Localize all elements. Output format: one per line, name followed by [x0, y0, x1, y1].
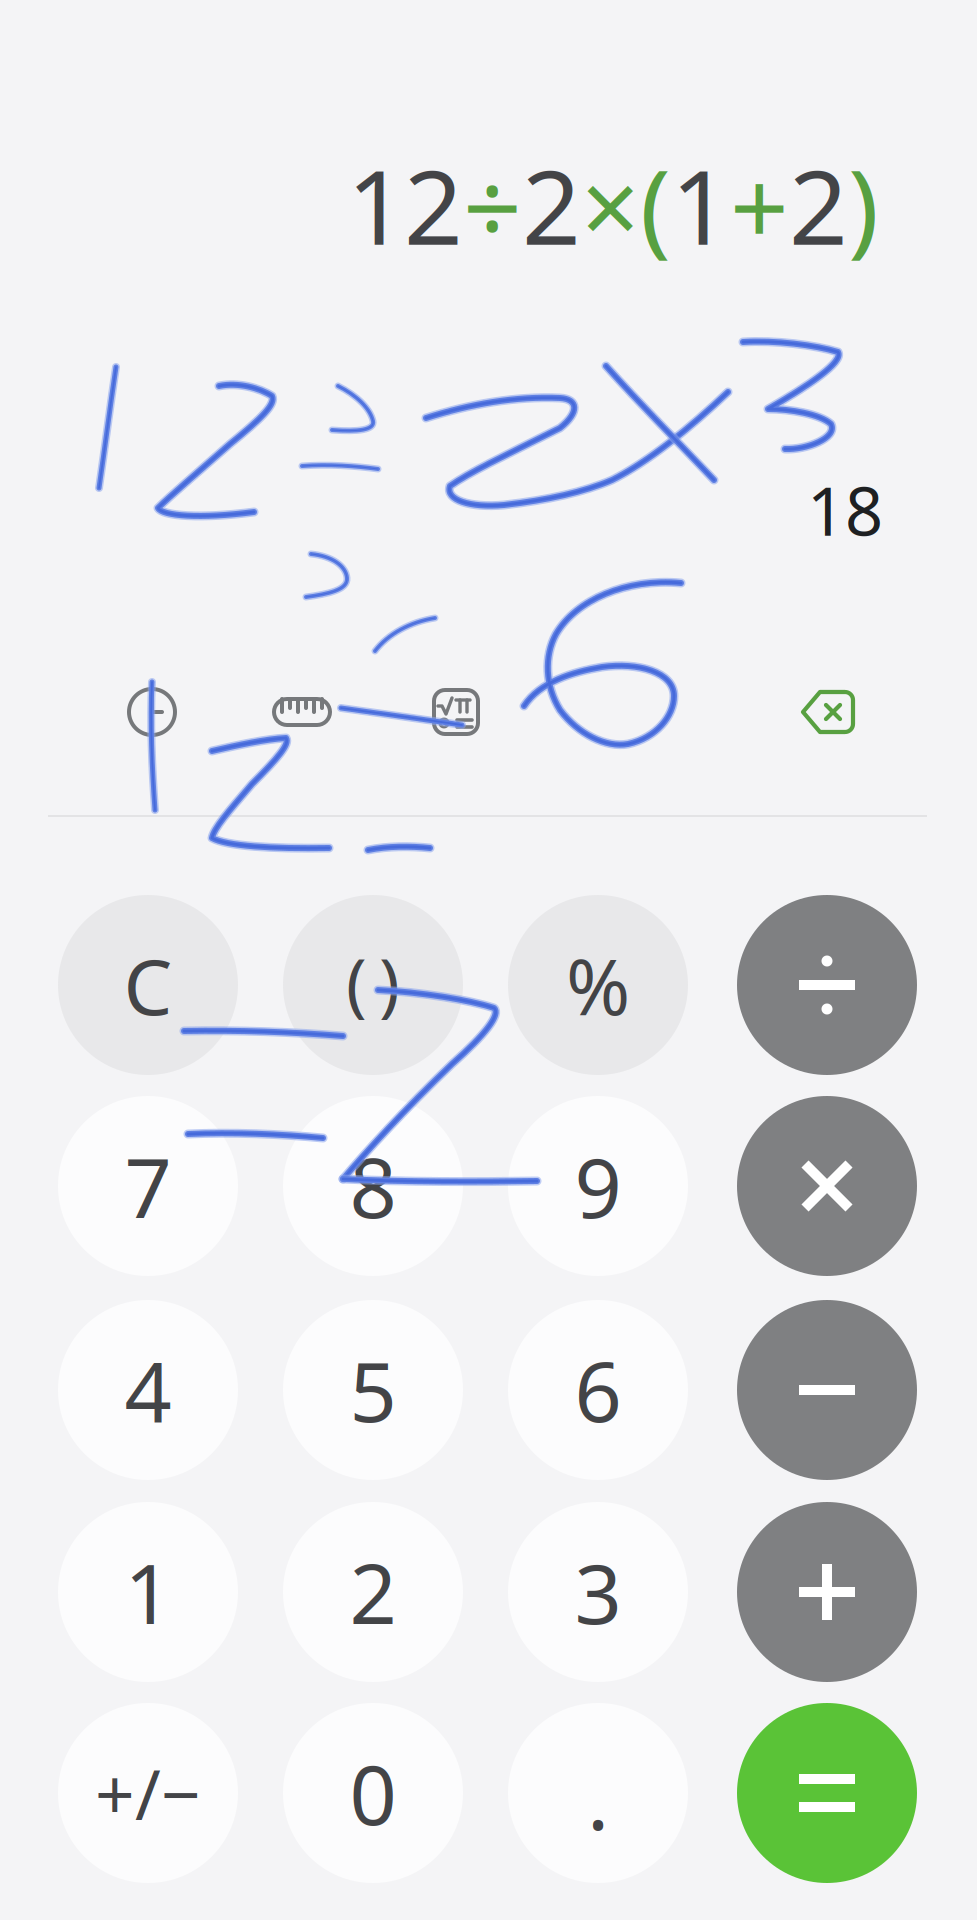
button[interactable]: 5	[283, 1300, 463, 1480]
staticText: 2	[349, 1537, 396, 1647]
button[interactable]: ( )	[283, 895, 463, 1075]
button[interactable]: 8	[283, 1096, 463, 1276]
button[interactable]: Add	[737, 1502, 917, 1682]
staticText: .	[587, 1743, 609, 1853]
staticText: ×	[581, 137, 640, 273]
staticText: 8	[349, 1131, 396, 1241]
button[interactable]: 9	[508, 1096, 688, 1276]
button[interactable]: History	[120, 680, 184, 744]
button[interactable]: Subtract	[737, 1300, 917, 1480]
staticText: %	[566, 934, 630, 1036]
staticText: ÷	[463, 137, 522, 273]
staticText: 12	[347, 137, 463, 273]
button[interactable]: 0	[283, 1703, 463, 1883]
button[interactable]: %	[508, 895, 688, 1075]
button[interactable]: 6	[508, 1300, 688, 1480]
staticText: 2	[789, 137, 848, 273]
staticText: 5	[349, 1335, 396, 1445]
staticText: 1	[671, 137, 730, 273]
staticText: 7	[124, 1131, 171, 1241]
button[interactable]: 1	[58, 1502, 238, 1682]
staticText: 2	[522, 137, 581, 273]
staticText: 6	[574, 1335, 621, 1445]
staticText: C	[123, 934, 172, 1036]
button[interactable]: Multiply	[737, 1096, 917, 1276]
staticText: 1	[124, 1537, 171, 1647]
button[interactable]: +/−	[58, 1703, 238, 1883]
button[interactable]: .	[508, 1703, 688, 1883]
button[interactable]: Equals	[737, 1703, 917, 1883]
staticText: )	[848, 137, 879, 273]
button[interactable]: Formulas	[424, 680, 488, 744]
staticText: 9	[574, 1131, 621, 1241]
button[interactable]: 4	[58, 1300, 238, 1480]
button[interactable]: Backspace	[796, 680, 860, 744]
button[interactable]: C	[58, 895, 238, 1075]
staticText: 0	[349, 1738, 396, 1848]
staticText: 4	[124, 1335, 171, 1445]
staticText: +	[730, 137, 789, 273]
staticText: 3	[574, 1537, 621, 1647]
button[interactable]: Unit converter	[270, 680, 334, 744]
button[interactable]: Divide	[737, 895, 917, 1075]
button[interactable]: 2	[283, 1502, 463, 1682]
button[interactable]: 7	[58, 1096, 238, 1276]
staticText: +/−	[95, 1747, 201, 1839]
button[interactable]: 3	[508, 1502, 688, 1682]
staticText: 18	[807, 466, 883, 554]
staticText: ( )	[346, 936, 400, 1028]
staticText: (	[640, 137, 671, 273]
